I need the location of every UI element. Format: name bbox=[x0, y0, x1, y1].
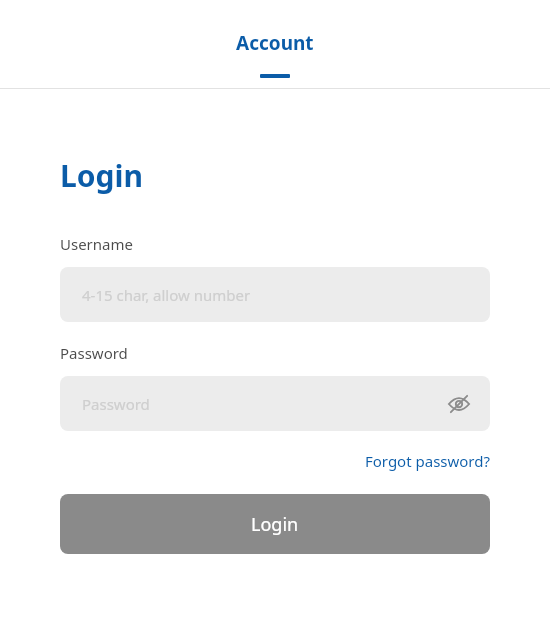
staticText: Login bbox=[251, 512, 299, 537]
button[interactable]: Password bbox=[60, 376, 490, 431]
staticText: Password bbox=[60, 343, 128, 363]
button[interactable]: Login bbox=[60, 494, 490, 554]
button[interactable]: Account bbox=[236, 0, 314, 78]
button[interactable]: Forgot password? bbox=[364, 451, 490, 471]
button[interactable]: Show password bbox=[444, 389, 474, 419]
button[interactable]: 4-15 char, allow number bbox=[60, 267, 490, 322]
staticText: Password bbox=[82, 394, 150, 414]
staticText: Account bbox=[236, 30, 314, 56]
staticText: Username bbox=[60, 234, 133, 254]
staticText: Forgot password? bbox=[364, 451, 490, 471]
staticText: 4-15 char, allow number bbox=[82, 285, 251, 305]
staticText: Login bbox=[60, 155, 143, 196]
